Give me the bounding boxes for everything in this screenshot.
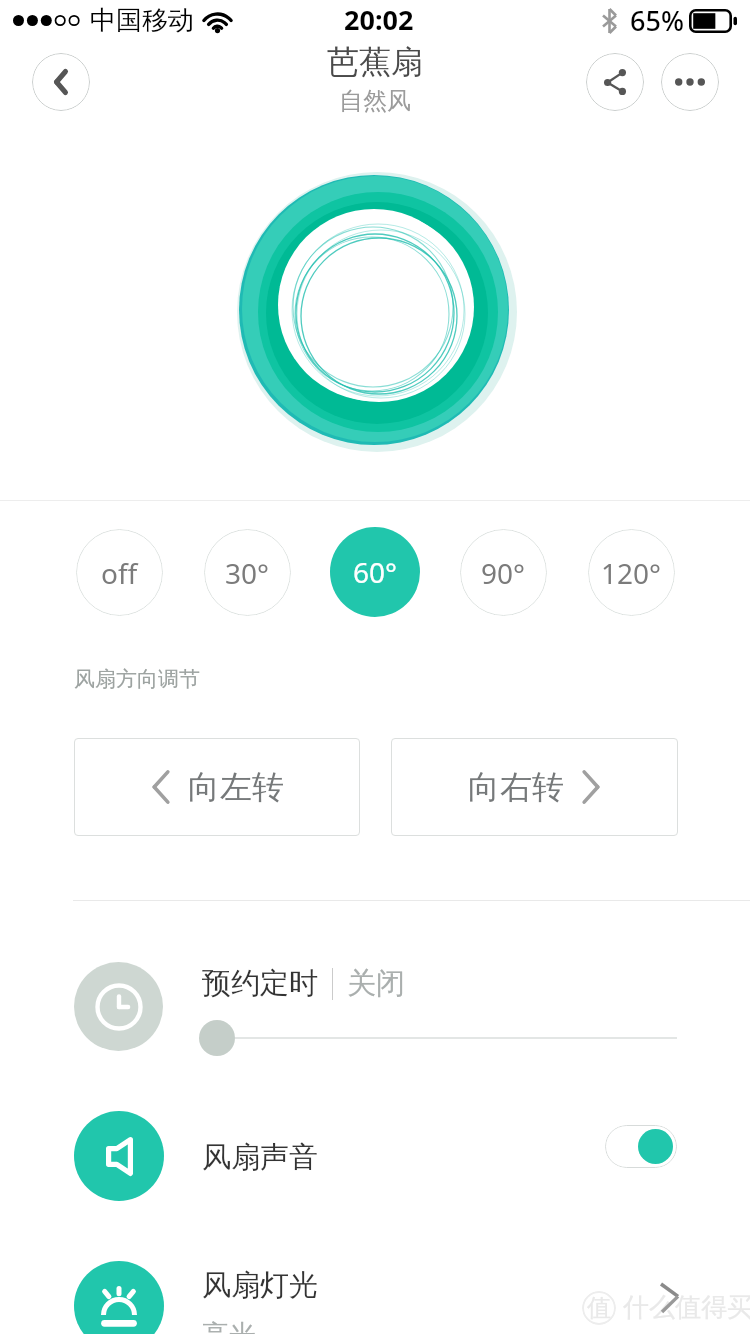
staticText: 向左转: [188, 767, 284, 807]
staticText: 120°: [601, 554, 662, 592]
button[interactable]: 120°: [588, 529, 675, 616]
button[interactable]: 30°: [204, 529, 291, 616]
button[interactable]: 向右转: [391, 738, 678, 836]
button[interactable]: 风扇灯光: [0, 1232, 750, 1334]
staticText: 风扇灯光: [202, 1267, 318, 1304]
staticText: 什么值得买: [623, 1291, 750, 1324]
button[interactable]: More options: [661, 53, 719, 111]
button[interactable]: 60°: [330, 527, 420, 617]
staticText: 90°: [481, 554, 526, 592]
staticText: 芭蕉扇: [327, 42, 423, 82]
staticText: off: [101, 554, 138, 592]
staticText: 向右转: [468, 767, 564, 807]
staticText: 风扇方向调节: [74, 666, 200, 692]
button[interactable]: 风扇声音: [0, 1082, 750, 1230]
staticText: 关闭: [347, 965, 405, 1002]
staticText: 60°: [353, 553, 398, 591]
button[interactable]: 90°: [460, 529, 547, 616]
button[interactable]: 预约定时: [0, 932, 750, 1080]
staticText: 预约定时: [202, 965, 318, 1002]
button[interactable]: 向左转: [74, 738, 360, 836]
staticText: 自然风: [339, 86, 411, 116]
button[interactable]: Back: [32, 53, 90, 111]
staticText: 风扇声音: [202, 1139, 318, 1176]
staticText: 20:02: [344, 1, 414, 38]
button[interactable]: off: [76, 529, 163, 616]
staticText: 中国移动: [90, 4, 194, 37]
staticText: 65%: [630, 2, 684, 39]
staticText: 30°: [225, 554, 270, 592]
staticText: 值: [587, 1293, 611, 1323]
staticText: 高光: [202, 1318, 256, 1334]
button[interactable]: Fan sound toggle: [605, 1125, 677, 1168]
button[interactable]: Share: [586, 53, 644, 111]
